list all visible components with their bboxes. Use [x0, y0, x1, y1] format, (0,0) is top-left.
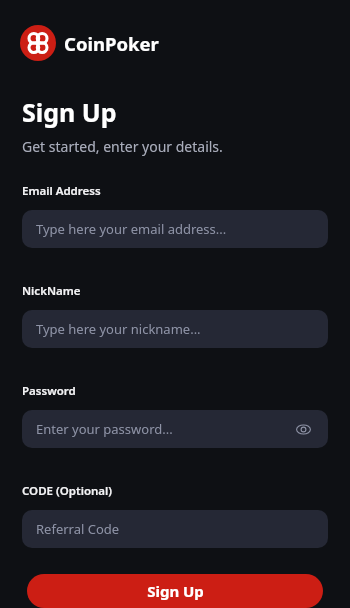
staticText: Password	[22, 383, 76, 399]
staticText: CODE (Optional)	[22, 483, 113, 499]
staticText: Enter your password...	[36, 420, 173, 438]
button[interactable]: Referral Code	[22, 510, 328, 548]
staticText: Email Address	[22, 183, 101, 199]
staticText: Type here your email address...	[36, 220, 227, 238]
button[interactable]: Sign Up	[27, 574, 323, 608]
staticText: Get started, enter your details.	[22, 137, 223, 156]
staticText: Sign Up	[147, 581, 204, 601]
button[interactable]: Show password	[292, 418, 314, 440]
staticText: Type here your nickname...	[36, 320, 201, 338]
button[interactable]: Enter your password...	[22, 410, 328, 448]
staticText: Sign Up	[22, 95, 117, 129]
staticText: CoinPoker	[64, 31, 159, 56]
staticText: Referral Code	[36, 520, 120, 538]
button[interactable]: Type here your nickname...	[22, 310, 328, 348]
staticText: NickName	[22, 283, 81, 299]
button[interactable]: Type here your email address...	[22, 210, 328, 248]
button[interactable]: CoinPoker	[20, 25, 159, 61]
